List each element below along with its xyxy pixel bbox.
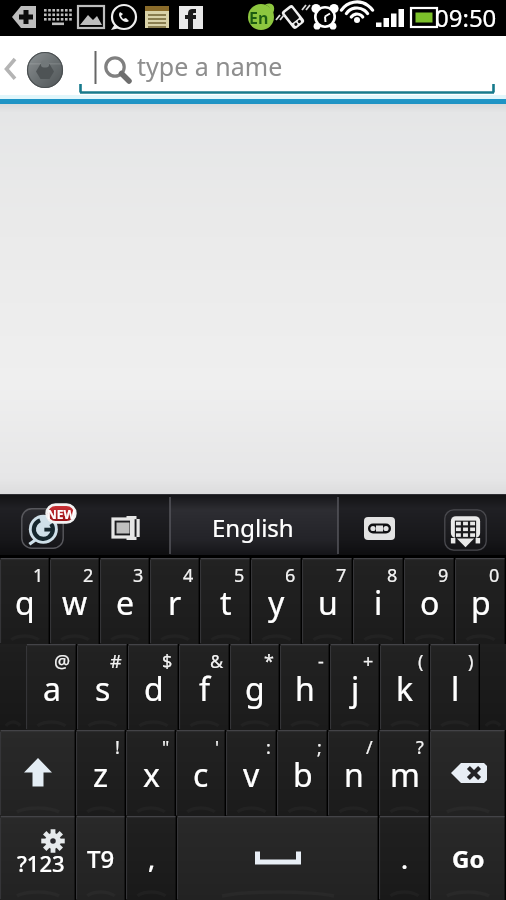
staticText: )	[468, 649, 474, 674]
staticText: s	[95, 667, 111, 711]
staticText: y	[268, 581, 285, 625]
button[interactable]: $	[128, 644, 179, 730]
staticText: 09:50	[435, 1, 497, 34]
button[interactable]: ,	[126, 816, 177, 900]
staticText: /	[366, 735, 373, 760]
staticText: e	[116, 581, 135, 625]
staticText: #	[110, 649, 122, 674]
staticText: g	[245, 667, 265, 711]
staticText: ;	[317, 735, 322, 760]
staticText: b	[293, 753, 313, 797]
button[interactable]: 5	[200, 558, 251, 644]
staticText: v	[243, 753, 260, 797]
button[interactable]: Back	[0, 36, 24, 104]
staticText: a	[43, 667, 61, 711]
button[interactable]: +	[330, 644, 380, 730]
staticText: .	[401, 841, 409, 876]
button[interactable]: type a name	[79, 36, 495, 96]
button[interactable]: 3	[100, 558, 150, 644]
button[interactable]: -	[280, 644, 330, 730]
staticText: x	[143, 753, 160, 797]
staticText: :	[266, 735, 271, 760]
staticText: c	[193, 753, 209, 797]
button[interactable]: )	[430, 644, 480, 730]
button[interactable]: 0	[455, 558, 506, 644]
button[interactable]: Hide keyboard	[444, 509, 487, 551]
staticText: Go	[452, 842, 485, 875]
button[interactable]: *	[230, 644, 280, 730]
staticText: '	[215, 735, 220, 760]
staticText: d	[144, 667, 164, 711]
button[interactable]: 7	[302, 558, 353, 644]
staticText: T9	[87, 842, 115, 875]
button[interactable]: Backspace	[430, 730, 506, 816]
staticText: k	[396, 667, 414, 711]
button[interactable]: Voice input	[356, 508, 403, 548]
button[interactable]: T9	[76, 816, 126, 900]
button[interactable]: 6	[251, 558, 302, 644]
staticText: 4	[183, 563, 194, 588]
staticText: 0	[489, 563, 500, 588]
button[interactable]: 2	[50, 558, 100, 644]
staticText: 7	[336, 563, 347, 588]
staticText: NEW	[47, 506, 76, 522]
staticText: 3	[133, 563, 144, 588]
staticText: !	[115, 735, 120, 760]
staticText: r	[168, 581, 182, 625]
staticText: "	[162, 735, 170, 760]
staticText: f	[199, 667, 211, 711]
staticText: p	[471, 581, 491, 625]
button[interactable]: 4	[150, 558, 200, 644]
staticText: $	[162, 649, 173, 674]
button[interactable]: /	[328, 730, 379, 816]
button[interactable]: @	[26, 644, 77, 730]
staticText: @	[54, 649, 71, 674]
staticText: l	[451, 667, 460, 711]
button[interactable]: Space	[177, 816, 379, 900]
staticText: type a name	[137, 49, 283, 83]
button[interactable]: Symbols	[0, 816, 76, 900]
staticText: z	[93, 753, 109, 797]
button[interactable]: (	[380, 644, 430, 730]
button[interactable]: !	[76, 730, 126, 816]
staticText: m	[390, 753, 420, 797]
button[interactable]: &	[179, 644, 230, 730]
button[interactable]: Contact	[26, 51, 64, 89]
button[interactable]: 8	[353, 558, 404, 644]
staticText: n	[344, 753, 364, 797]
staticText: w	[62, 581, 88, 625]
staticText: En	[249, 7, 269, 29]
staticText: ?123	[17, 848, 65, 878]
button[interactable]: Resize keyboard	[104, 508, 148, 548]
button[interactable]: 9	[404, 558, 455, 644]
staticText: j	[351, 667, 360, 711]
staticText: u	[318, 581, 338, 625]
staticText: ,	[148, 841, 156, 876]
staticText: 5	[234, 563, 245, 588]
staticText: o	[420, 581, 440, 625]
staticText: &	[210, 649, 224, 674]
button[interactable]: English	[212, 511, 294, 544]
staticText: 1	[33, 563, 44, 588]
staticText: 9	[438, 563, 449, 588]
button[interactable]: "	[126, 730, 176, 816]
button[interactable]: Go	[430, 816, 506, 900]
staticText: 8	[387, 563, 398, 588]
button[interactable]: Shift	[0, 730, 76, 816]
button[interactable]: 1	[0, 558, 50, 644]
button[interactable]: Go keyboard	[21, 508, 64, 549]
staticText: h	[295, 667, 315, 711]
button[interactable]: ;	[277, 730, 328, 816]
button[interactable]: #	[77, 644, 128, 730]
button[interactable]: :	[226, 730, 277, 816]
button[interactable]: '	[176, 730, 226, 816]
staticText: (	[418, 649, 424, 674]
staticText: q	[15, 581, 35, 625]
staticText: *	[264, 649, 274, 674]
staticText: 2	[83, 563, 94, 588]
staticText: ?	[416, 735, 424, 760]
staticText: t	[220, 581, 232, 625]
button[interactable]: ?	[379, 730, 430, 816]
staticText: i	[374, 581, 383, 625]
button[interactable]: .	[379, 816, 430, 900]
